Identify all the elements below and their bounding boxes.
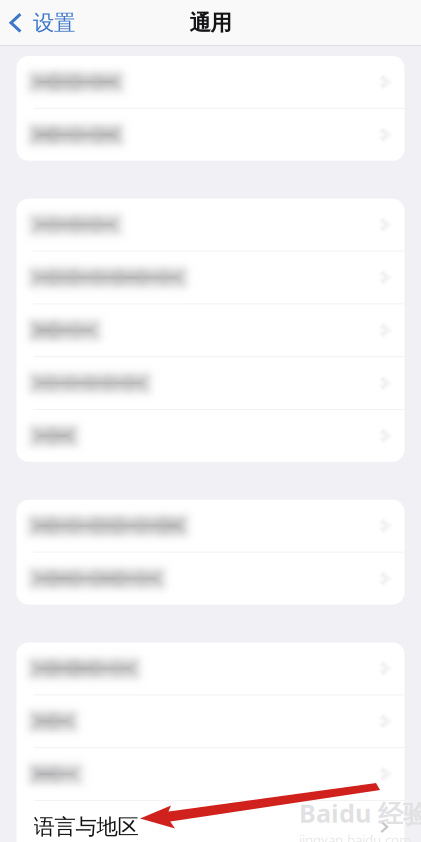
button[interactable]: Settings item [16,357,404,409]
staticText: 设置 [33,10,75,36]
staticText: jingyan.baidu.com [299,831,411,842]
button[interactable]: Settings item [16,199,404,251]
button[interactable]: Settings item [16,642,404,694]
staticText: 通用 [189,10,231,36]
button[interactable]: Settings item [16,500,404,552]
button[interactable]: Settings item [16,109,404,161]
staticText: Baidu 经验 [299,796,421,830]
button[interactable]: Settings item [16,553,404,604]
button[interactable]: 语言与地区 [16,801,404,842]
button[interactable]: Settings item [16,251,404,303]
button[interactable]: Settings item [16,56,404,108]
staticText: 语言与地区 [33,814,138,840]
button[interactable]: 设置 [0,0,87,46]
button[interactable]: Settings item [16,304,404,356]
button[interactable]: Settings item [16,748,404,800]
button[interactable]: Settings item [16,695,404,747]
button[interactable]: Settings item [16,410,404,462]
